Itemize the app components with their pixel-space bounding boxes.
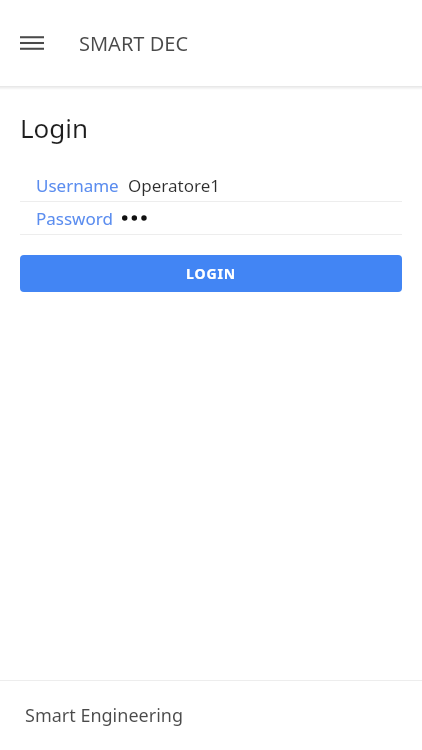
staticText: Smart Engineering: [25, 703, 183, 728]
button[interactable]: Username: [0, 169, 422, 201]
staticText: Password: [36, 207, 113, 230]
button[interactable]: Open navigation menu: [8, 19, 56, 67]
staticText: Login: [20, 110, 89, 145]
staticText: Username: [36, 174, 119, 197]
button[interactable]: LOGIN: [20, 255, 402, 292]
staticText: Operatore1: [128, 174, 220, 197]
staticText: LOGIN: [186, 264, 237, 283]
button[interactable]: Password: [0, 202, 422, 234]
staticText: SMART DEC: [79, 30, 189, 57]
